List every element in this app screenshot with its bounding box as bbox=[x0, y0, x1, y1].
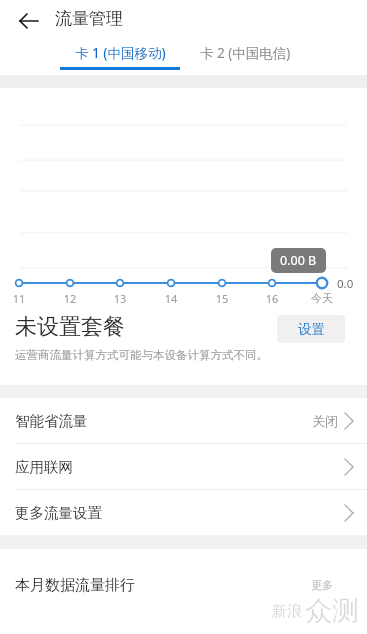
staticText: 12 bbox=[56, 291, 84, 306]
staticText: 更多 bbox=[311, 578, 333, 592]
staticText: 0.00 B bbox=[280, 252, 317, 269]
staticText: 流量管理 bbox=[55, 8, 123, 29]
staticText: 更多流量设置 bbox=[15, 504, 102, 522]
staticText: 卡 1 (中国移动) bbox=[75, 44, 166, 62]
staticText: 智能省流量 bbox=[15, 412, 88, 430]
staticText: 今天 bbox=[308, 291, 336, 305]
button[interactable]: 卡 1 (中国移动) bbox=[73, 42, 168, 64]
button[interactable]: 更多流量设置 bbox=[0, 490, 367, 535]
button[interactable]: 应用联网 bbox=[0, 444, 367, 489]
staticText: 运营商流量计算方式可能与本设备计算方式不同。 bbox=[15, 348, 268, 362]
staticText: 16 bbox=[258, 291, 286, 306]
staticText: 未设置套餐 bbox=[15, 313, 125, 341]
staticText: 0.0 bbox=[337, 276, 354, 292]
staticText: 卡 2 (中国电信) bbox=[200, 44, 291, 62]
button[interactable]: 设置 bbox=[277, 315, 345, 343]
staticText: 新浪 bbox=[272, 602, 302, 621]
button[interactable]: Back bbox=[10, 5, 48, 37]
staticText: 本月数据流量排行 bbox=[15, 576, 135, 595]
staticText: 15 bbox=[208, 291, 236, 306]
staticText: 关闭 bbox=[312, 413, 338, 429]
staticText: 众测 bbox=[305, 594, 359, 628]
staticText: 应用联网 bbox=[15, 458, 73, 476]
staticText: 11 bbox=[5, 291, 33, 306]
button[interactable]: 卡 2 (中国电信) bbox=[198, 42, 293, 64]
button[interactable]: 本月数据流量排行 bbox=[0, 549, 367, 621]
button[interactable]: 智能省流量 bbox=[0, 398, 367, 443]
staticText: 14 bbox=[157, 291, 185, 306]
staticText: 设置 bbox=[298, 321, 325, 338]
staticText: 13 bbox=[106, 291, 134, 306]
